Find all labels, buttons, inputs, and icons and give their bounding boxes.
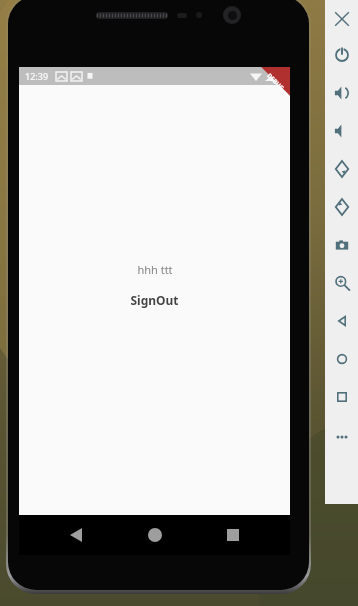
staticText: 12:39 <box>25 70 49 82</box>
button[interactable]: Close <box>325 4 358 34</box>
button[interactable]: Volume down <box>325 116 358 146</box>
button[interactable]: Take screenshot <box>325 230 358 260</box>
button[interactable]: SignOut <box>122 290 187 310</box>
button[interactable]: Back <box>54 515 98 555</box>
button[interactable]: Back <box>325 306 358 336</box>
button[interactable]: Rotate left <box>325 154 358 184</box>
button[interactable]: Recent apps <box>211 515 255 555</box>
button[interactable]: Home <box>133 515 177 555</box>
button[interactable]: Rotate right <box>325 192 358 222</box>
button[interactable]: Power <box>325 40 358 70</box>
button[interactable]: Volume up <box>325 78 358 108</box>
button[interactable]: Home <box>325 344 358 374</box>
staticText: SignOut <box>130 292 179 308</box>
button[interactable]: Zoom <box>325 268 358 298</box>
staticText: hhh ttt <box>137 262 173 277</box>
button[interactable]: Overview <box>325 382 358 412</box>
staticText: DEBUG <box>265 72 286 92</box>
button[interactable]: More <box>325 422 358 452</box>
